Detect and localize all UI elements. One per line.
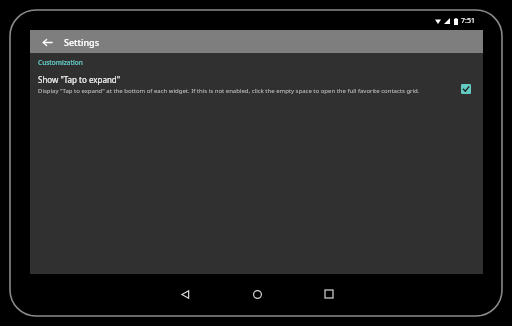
button[interactable]: Back [36,31,58,53]
button[interactable]: Show "Tap to expand" [30,72,483,102]
button[interactable]: Home [234,274,280,314]
button[interactable]: Back [162,274,208,314]
button[interactable]: Show Tap to expand checkbox [457,80,475,98]
staticText: Settings [64,36,100,48]
staticText: Show "Tap to expand" [38,74,121,85]
staticText: 7:51 [461,16,475,26]
staticText: Display "Tap to expand" at the bottom of… [38,87,420,95]
button[interactable]: Recent apps [306,274,352,314]
staticText: Customization [38,58,83,67]
